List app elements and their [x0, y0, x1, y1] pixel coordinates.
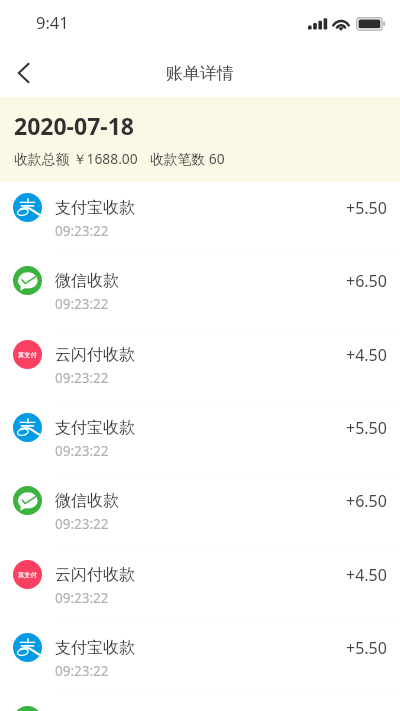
staticText: 支付宝收款 — [55, 198, 135, 218]
staticText: 云闪付收款 — [55, 345, 135, 365]
staticText: 支付宝收款 — [55, 418, 135, 438]
staticText: 09:23:22 — [55, 662, 109, 680]
button[interactable]: 支付宝收款 — [0, 622, 400, 695]
staticText: 支付宝收款 — [55, 638, 135, 658]
staticText: 收款笔数 60 — [150, 149, 225, 168]
staticText: 2020-07-18 — [14, 110, 134, 141]
button[interactable]: 支付宝收款 — [0, 182, 400, 255]
staticText: +5.50 — [346, 637, 387, 659]
staticText: 09:23:22 — [55, 589, 109, 607]
staticText: 09:23:22 — [55, 515, 109, 533]
staticText: 翼支付 — [18, 351, 37, 359]
staticText: +4.50 — [346, 344, 387, 366]
staticText: 09:23:22 — [55, 442, 109, 460]
button[interactable]: 微信收款 — [0, 255, 400, 329]
staticText: 翼支付 — [18, 571, 37, 579]
button[interactable]: 翼支付 — [0, 329, 400, 402]
staticText: 云闪付收款 — [55, 565, 135, 585]
staticText: 收款总额 ￥1688.00 — [14, 149, 138, 168]
staticText: +5.50 — [346, 197, 387, 219]
button[interactable]: 翼支付 — [0, 549, 400, 622]
button[interactable]: 微信收款 — [0, 695, 400, 711]
staticText: +5.50 — [346, 417, 387, 439]
staticText: +4.50 — [346, 564, 387, 586]
button[interactable]: Back — [3, 52, 45, 94]
staticText: 账单详情 — [166, 63, 234, 84]
staticText: 9:41 — [36, 11, 69, 33]
staticText: 微信收款 — [55, 271, 119, 291]
staticText: 09:23:22 — [55, 295, 109, 313]
staticText: 09:23:22 — [55, 369, 109, 387]
staticText: +6.50 — [346, 490, 387, 512]
staticText: 微信收款 — [55, 491, 119, 511]
button[interactable]: 支付宝收款 — [0, 402, 400, 475]
staticText: 09:23:22 — [55, 222, 109, 240]
staticText: +6.50 — [346, 270, 387, 292]
button[interactable]: 微信收款 — [0, 475, 400, 549]
